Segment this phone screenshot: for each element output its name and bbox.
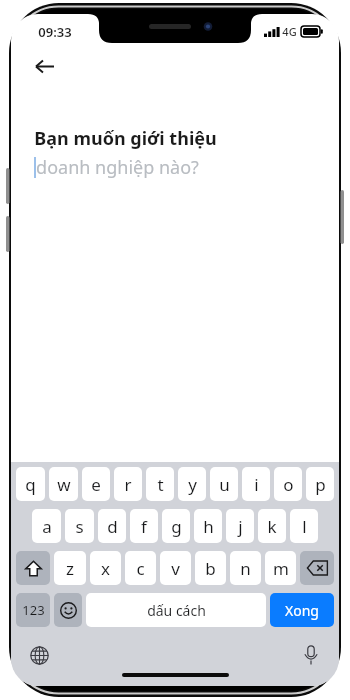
staticText: y <box>188 473 197 496</box>
button[interactable]: dấu cách <box>86 593 266 627</box>
button[interactable]: l <box>290 509 318 543</box>
staticText: i <box>254 473 259 496</box>
staticText: q <box>25 473 36 496</box>
staticText: l <box>302 515 307 538</box>
button[interactable]: t <box>146 467 174 501</box>
staticText: w <box>57 473 71 496</box>
button[interactable]: p <box>306 467 334 501</box>
button[interactable]: x <box>90 551 121 585</box>
staticText: dấu cách <box>147 601 206 620</box>
staticText: 09:33 <box>38 23 72 41</box>
button[interactable]: f <box>130 509 158 543</box>
staticText: e <box>91 473 101 496</box>
staticText: doanh nghiệp nào? <box>36 155 199 180</box>
button[interactable]: q <box>16 467 45 501</box>
staticText: x <box>101 557 110 580</box>
staticText: f <box>141 515 147 538</box>
button[interactable]: d <box>98 509 126 543</box>
button[interactable]: Dictation <box>296 640 326 670</box>
button[interactable]: Shift <box>16 551 50 585</box>
staticText: t <box>157 473 164 496</box>
staticText: h <box>203 515 214 538</box>
button[interactable]: g <box>162 509 190 543</box>
staticText: m <box>273 557 289 580</box>
button[interactable]: 123 <box>16 593 50 627</box>
button[interactable]: z <box>54 551 86 585</box>
staticText: a <box>42 515 52 538</box>
button[interactable]: Emoji <box>54 593 82 627</box>
staticText: k <box>267 515 277 538</box>
button[interactable]: h <box>194 509 222 543</box>
staticText: o <box>283 473 294 496</box>
staticText: Bạn muốn giới thiệu <box>34 126 217 151</box>
button[interactable]: u <box>210 467 238 501</box>
staticText: u <box>219 473 230 496</box>
staticText: z <box>66 557 74 580</box>
button[interactable]: y <box>178 467 206 501</box>
staticText: v <box>171 557 180 580</box>
button[interactable]: c <box>125 551 156 585</box>
staticText: b <box>205 557 216 580</box>
button[interactable]: Back <box>26 48 62 84</box>
button[interactable]: Change keyboard <box>24 640 54 670</box>
staticText: 123 <box>22 601 45 619</box>
button[interactable]: o <box>274 467 302 501</box>
button[interactable]: j <box>226 509 254 543</box>
staticText: g <box>171 515 182 538</box>
button[interactable]: n <box>230 551 261 585</box>
staticText: j <box>238 515 243 538</box>
button[interactable]: k <box>258 509 286 543</box>
button[interactable]: i <box>242 467 270 501</box>
button[interactable]: r <box>114 467 142 501</box>
button[interactable]: b <box>195 551 226 585</box>
staticText: c <box>136 557 145 580</box>
button[interactable]: v <box>160 551 191 585</box>
staticText: p <box>315 473 326 496</box>
button[interactable]: e <box>82 467 110 501</box>
staticText: r <box>124 473 132 496</box>
button[interactable]: w <box>49 467 78 501</box>
button[interactable]: s <box>65 509 94 543</box>
staticText: s <box>75 515 84 538</box>
staticText: d <box>107 515 118 538</box>
button[interactable]: Xong <box>270 593 334 627</box>
button[interactable]: a <box>32 509 61 543</box>
button[interactable]: m <box>265 551 296 585</box>
staticText: Xong <box>285 601 319 620</box>
staticText: n <box>240 557 251 580</box>
staticText: 4G <box>282 24 297 39</box>
button[interactable]: Backspace <box>300 551 334 585</box>
